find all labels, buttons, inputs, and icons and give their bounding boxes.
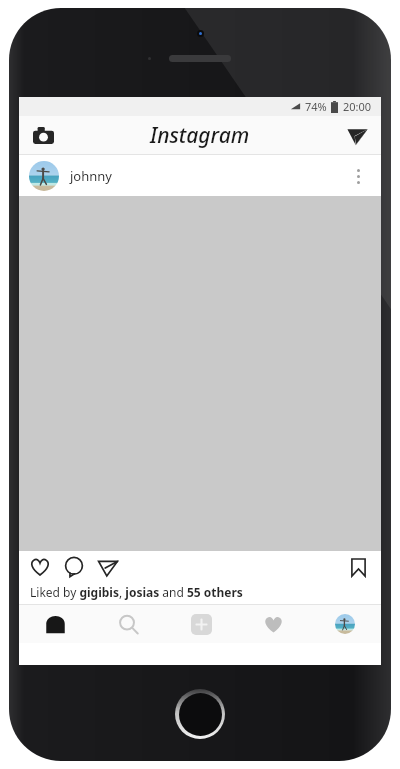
button[interactable]: Share — [95, 554, 121, 580]
button[interactable]: Profile — [309, 605, 381, 643]
staticText: Liked by gigibis, josias and 55 others — [30, 584, 243, 600]
button[interactable]: Like — [27, 554, 53, 580]
button[interactable]: Camera — [28, 120, 58, 150]
button[interactable]: Save — [345, 554, 371, 580]
button[interactable]: johnny — [19, 155, 381, 196]
button[interactable]: Direct messages — [342, 120, 372, 150]
staticText: 74% — [305, 99, 327, 114]
staticText: Instagram — [150, 121, 250, 150]
button[interactable]: More options — [341, 159, 375, 193]
staticText: 20:00 — [343, 99, 372, 114]
button[interactable]: Activity — [237, 605, 309, 643]
button[interactable]: Comment — [61, 554, 87, 580]
button[interactable]: Add post — [165, 605, 237, 643]
button[interactable]: Search — [92, 605, 165, 643]
button[interactable]: Liked by gigibis, josias and 55 others — [19, 583, 381, 601]
button[interactable]: Home — [19, 605, 92, 643]
staticText: johnny — [70, 167, 112, 185]
